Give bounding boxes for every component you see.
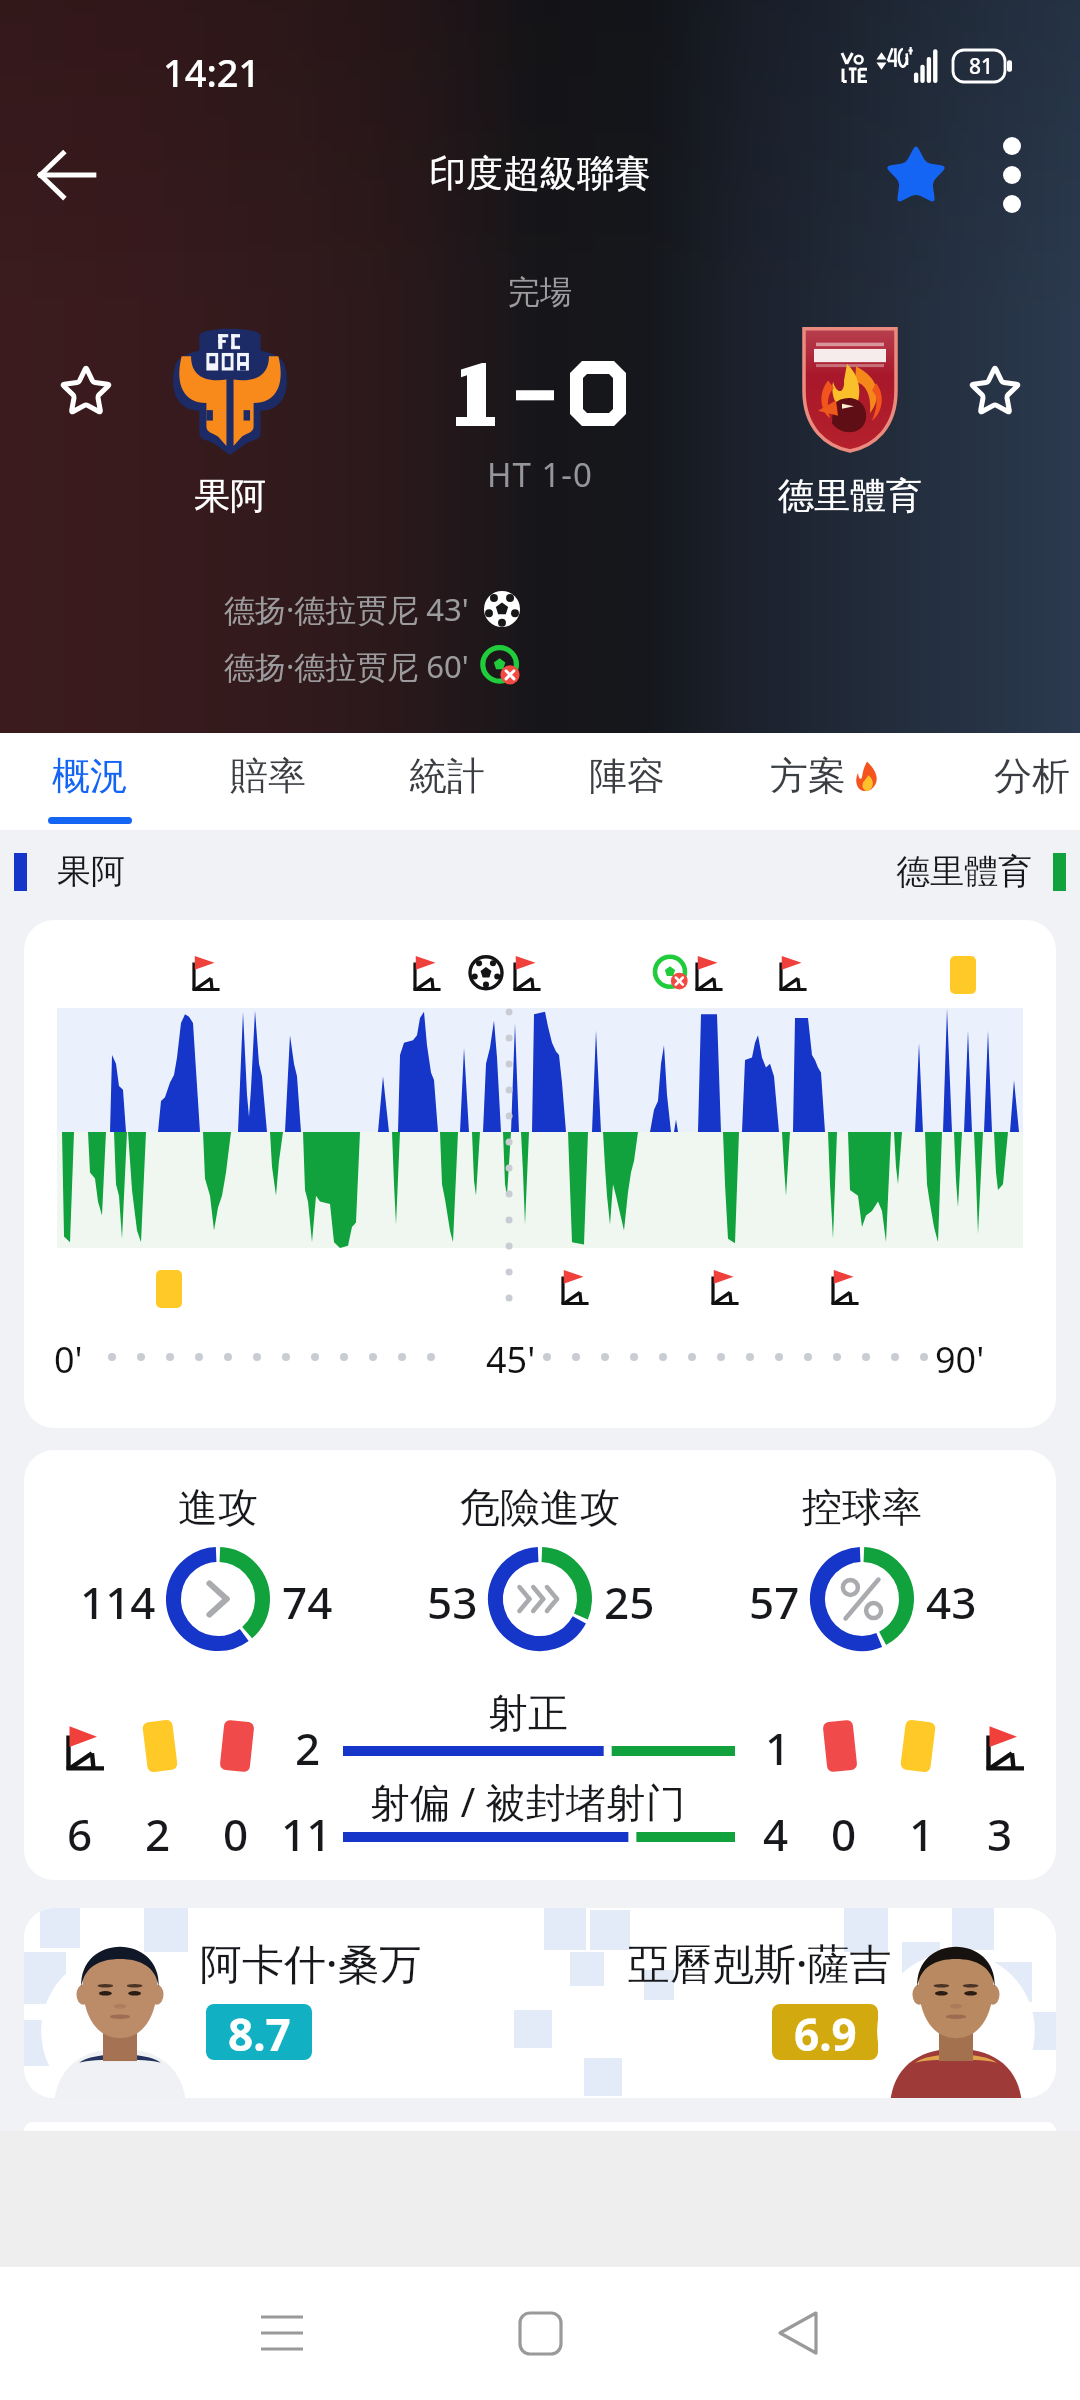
staticText: 果阿 bbox=[194, 473, 266, 518]
staticText: 45' bbox=[486, 1335, 536, 1384]
button[interactable]: Back bbox=[16, 125, 116, 225]
staticText: 1 bbox=[765, 1718, 791, 1774]
staticText: 分析 bbox=[994, 752, 1070, 800]
button[interactable]: Favorite bbox=[866, 125, 966, 225]
staticText: 0' bbox=[54, 1335, 83, 1384]
staticText: 進攻 bbox=[178, 1482, 258, 1532]
staticText: 3 bbox=[987, 1804, 1013, 1860]
staticText: 德扬·德拉贾尼 43' bbox=[224, 588, 469, 630]
staticText: 53 bbox=[427, 1572, 478, 1628]
staticText: 統計 bbox=[409, 752, 485, 800]
staticText: 危險進攻 bbox=[460, 1482, 620, 1532]
staticText: 114 bbox=[80, 1572, 156, 1628]
staticText: 德里體育 bbox=[778, 473, 922, 518]
button[interactable]: 陣容 bbox=[542, 733, 712, 830]
staticText: 43 bbox=[926, 1572, 977, 1628]
staticText: 4 bbox=[763, 1804, 789, 1860]
button[interactable]: Recent apps bbox=[222, 2273, 342, 2393]
staticText: 57 bbox=[749, 1572, 800, 1628]
staticText: 0 bbox=[223, 1804, 249, 1860]
staticText: 控球率 bbox=[802, 1482, 922, 1532]
staticText: 果阿 bbox=[57, 850, 125, 893]
staticText: 25 bbox=[604, 1572, 655, 1628]
staticText: 概況 bbox=[52, 752, 128, 800]
staticText: 0 bbox=[831, 1804, 857, 1860]
staticText: 6 bbox=[67, 1804, 93, 1860]
staticText: 2 bbox=[145, 1804, 171, 1860]
staticText: 6.9 bbox=[794, 2004, 857, 2060]
staticText: 14:21 bbox=[163, 46, 261, 98]
staticText: 射偏 / 被封堵射门 bbox=[370, 1774, 686, 1829]
staticText: 賠率 bbox=[230, 752, 306, 800]
staticText: 射正 bbox=[488, 1688, 568, 1738]
staticText: 亞曆剋斯·薩吉 bbox=[628, 1934, 892, 1991]
staticText: 8.7 bbox=[228, 2004, 291, 2060]
staticText: 印度超級聯賽 bbox=[429, 150, 651, 197]
button[interactable]: Back bbox=[737, 2273, 857, 2393]
button[interactable]: 分析 bbox=[947, 733, 1080, 830]
staticText: 11 bbox=[281, 1804, 332, 1860]
staticText: 陣容 bbox=[589, 752, 665, 800]
staticText: 81 bbox=[969, 52, 994, 81]
staticText: 德扬·德拉贾尼 60' bbox=[224, 645, 469, 687]
staticText: 完場 bbox=[508, 272, 572, 312]
staticText: 1 bbox=[909, 1804, 935, 1860]
staticText: 方案 bbox=[770, 752, 846, 800]
staticText: 阿卡什·桑万 bbox=[200, 1934, 422, 1991]
button[interactable]: 統計 bbox=[362, 733, 532, 830]
button[interactable]: 概況 bbox=[5, 733, 175, 830]
staticText: 74 bbox=[282, 1572, 333, 1628]
staticText: HT 1-0 bbox=[487, 452, 593, 497]
button[interactable]: Home bbox=[480, 2273, 600, 2393]
staticText: 2 bbox=[295, 1718, 321, 1774]
button[interactable]: 賠率 bbox=[183, 733, 353, 830]
button[interactable]: Follow home team bbox=[49, 354, 123, 428]
button[interactable]: More options bbox=[962, 125, 1062, 225]
button[interactable]: Follow away team bbox=[958, 354, 1032, 428]
staticText: 90' bbox=[935, 1335, 985, 1384]
button[interactable]: 方案 bbox=[741, 733, 911, 830]
staticText: 德里體育 bbox=[896, 850, 1032, 893]
